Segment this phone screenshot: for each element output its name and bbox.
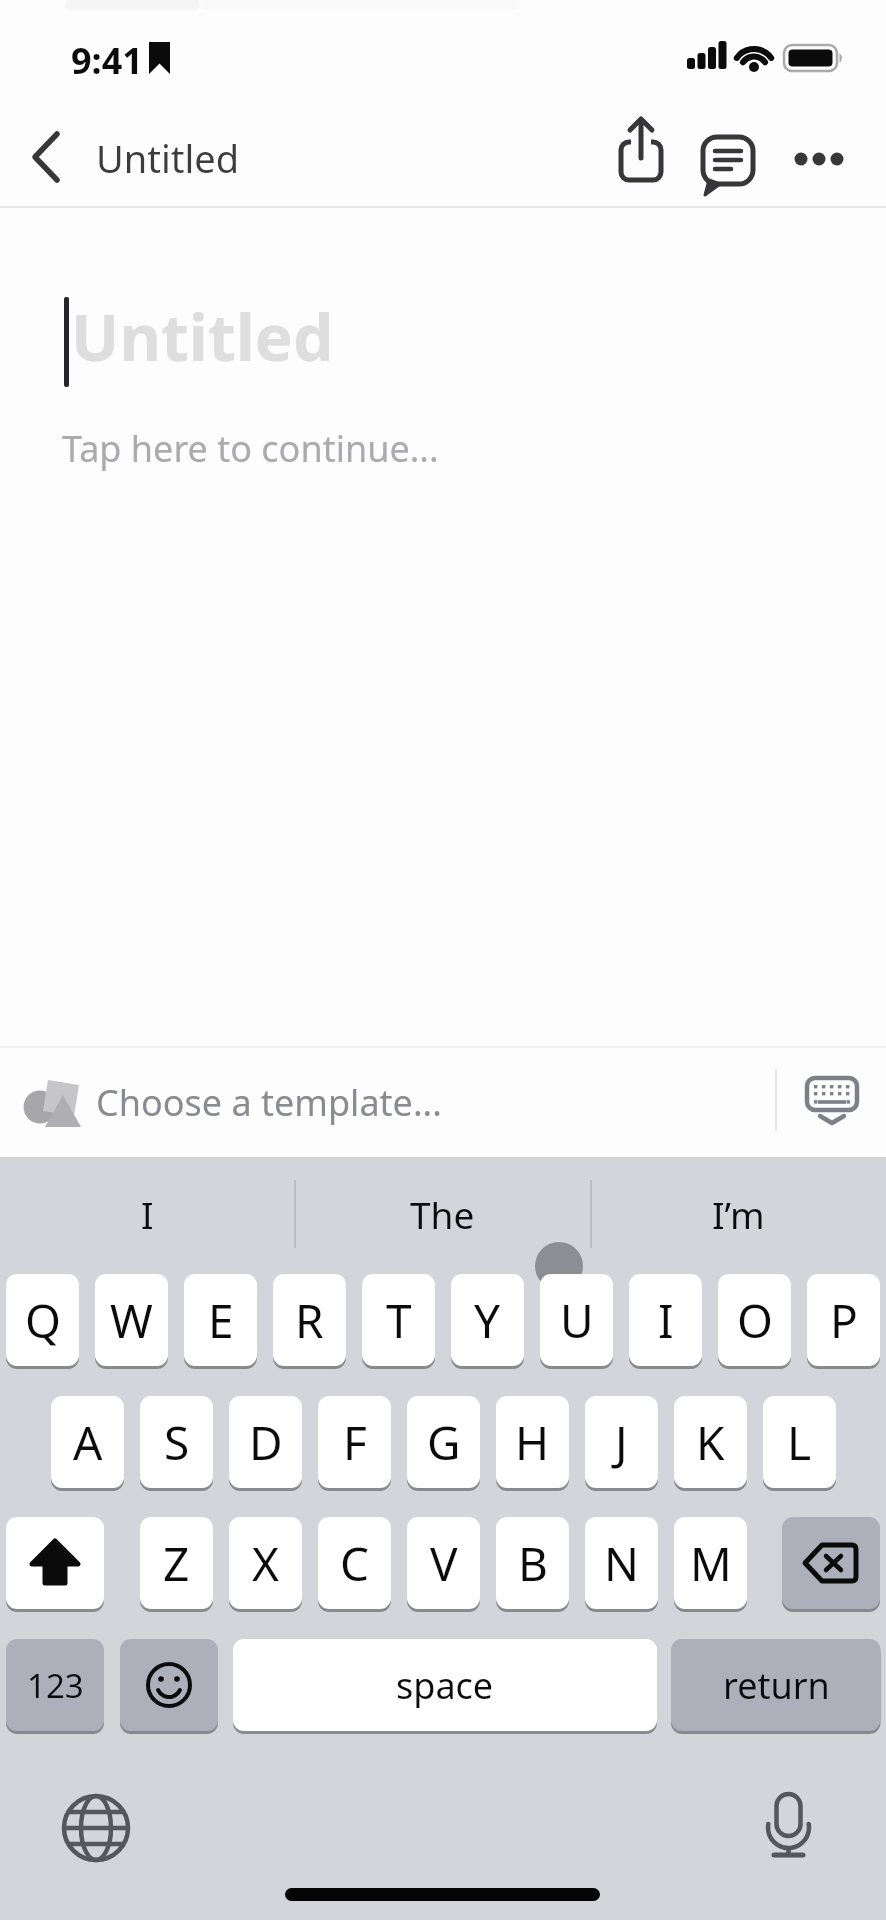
button[interactable]: W <box>95 1274 168 1369</box>
button[interactable]: X <box>229 1517 302 1612</box>
staticText: Y <box>474 1289 501 1352</box>
button[interactable]: Q <box>6 1274 79 1369</box>
button[interactable]: P <box>807 1274 880 1369</box>
button[interactable]: K <box>674 1396 747 1491</box>
button[interactable]: N <box>585 1517 658 1612</box>
button[interactable]: D <box>229 1396 302 1491</box>
button[interactable]: O <box>718 1274 791 1369</box>
staticText: J <box>615 1411 628 1474</box>
staticText: R <box>295 1289 324 1352</box>
staticText: Tap here to continue... <box>62 424 439 473</box>
button[interactable]: I <box>0 1165 295 1263</box>
staticText: 9:41 <box>71 36 143 78</box>
staticText: K <box>696 1411 725 1474</box>
staticText: Untitled <box>71 293 334 380</box>
staticText: V <box>430 1532 458 1595</box>
staticText: Choose a template... <box>96 1078 442 1127</box>
button[interactable]: H <box>496 1396 569 1491</box>
staticText: C <box>340 1532 370 1595</box>
button[interactable]: E <box>184 1274 257 1369</box>
staticText: space <box>396 1661 494 1710</box>
button[interactable]: return <box>671 1639 881 1734</box>
staticText: P <box>830 1289 858 1352</box>
staticText: N <box>604 1532 639 1595</box>
button[interactable]: V <box>407 1517 480 1612</box>
button[interactable]: Choose a template... <box>0 1048 775 1157</box>
button[interactable]: Y <box>451 1274 524 1369</box>
button[interactable]: B <box>496 1517 569 1612</box>
button[interactable]: Tap here to continue... <box>62 420 582 476</box>
button[interactable] <box>790 1058 876 1148</box>
staticText: I’m <box>712 1189 765 1239</box>
button[interactable] <box>6 1517 104 1612</box>
button[interactable]: U <box>540 1274 613 1369</box>
button[interactable] <box>120 1639 218 1734</box>
staticText: U <box>560 1289 594 1352</box>
staticText: return <box>723 1661 830 1710</box>
staticText: D <box>249 1411 283 1474</box>
staticText: G <box>427 1411 461 1474</box>
staticText: The <box>410 1189 475 1239</box>
staticText: B <box>518 1532 548 1595</box>
staticText: H <box>515 1411 550 1474</box>
button[interactable] <box>52 1784 140 1872</box>
button[interactable]: T <box>362 1274 435 1369</box>
button[interactable]: Z <box>140 1517 213 1612</box>
button[interactable] <box>746 1782 834 1870</box>
staticText: M <box>690 1532 732 1595</box>
button[interactable]: 123 <box>6 1639 104 1734</box>
button[interactable]: G <box>407 1396 480 1491</box>
button[interactable] <box>14 130 74 186</box>
button[interactable]: F <box>318 1396 391 1491</box>
button[interactable]: I’m <box>591 1165 886 1263</box>
staticText: S <box>164 1411 190 1474</box>
button[interactable]: M <box>674 1517 747 1612</box>
button[interactable] <box>782 1517 880 1612</box>
button[interactable]: J <box>585 1396 658 1491</box>
staticText: I <box>141 1189 154 1239</box>
button[interactable]: A <box>51 1396 124 1491</box>
staticText: W <box>110 1289 153 1352</box>
button[interactable]: I <box>629 1274 702 1369</box>
button[interactable]: The <box>295 1165 590 1263</box>
button[interactable]: space <box>233 1639 657 1734</box>
staticText: F <box>343 1411 367 1474</box>
button[interactable]: C <box>318 1517 391 1612</box>
staticText: Untitled <box>96 132 240 184</box>
staticText: E <box>208 1289 234 1352</box>
staticText: O <box>737 1289 773 1352</box>
button[interactable]: S <box>140 1396 213 1491</box>
button[interactable] <box>784 126 854 192</box>
staticText: L <box>787 1411 812 1474</box>
staticText: X <box>252 1532 279 1595</box>
button[interactable] <box>608 112 674 202</box>
button[interactable]: R <box>273 1274 346 1369</box>
staticText: Z <box>163 1532 190 1595</box>
staticText: I <box>658 1289 674 1352</box>
button[interactable]: L <box>763 1396 836 1491</box>
staticText: A <box>73 1411 103 1474</box>
staticText: T <box>386 1289 412 1352</box>
button[interactable] <box>694 122 764 206</box>
staticText: Q <box>25 1289 61 1352</box>
staticText: 123 <box>27 1663 84 1708</box>
